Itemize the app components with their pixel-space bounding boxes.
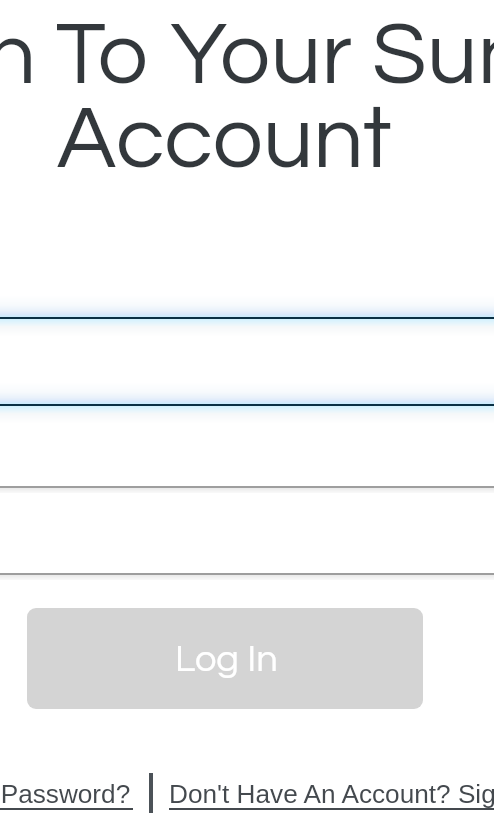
- staticText: Forgot Your Password?: [0, 779, 131, 808]
- button[interactable]: Log In: [27, 608, 423, 709]
- button[interactable]: Don't Have An Account? Sign Up: [169, 771, 494, 800]
- staticText: Log In To Your Sunrun: [0, 10, 494, 102]
- staticText: Log In: [175, 640, 278, 679]
- staticText: Account: [57, 94, 392, 186]
- staticText: Don't Have An Account? Sign Up: [169, 779, 494, 808]
- button[interactable]: Forgot Your Password?: [0, 771, 133, 800]
